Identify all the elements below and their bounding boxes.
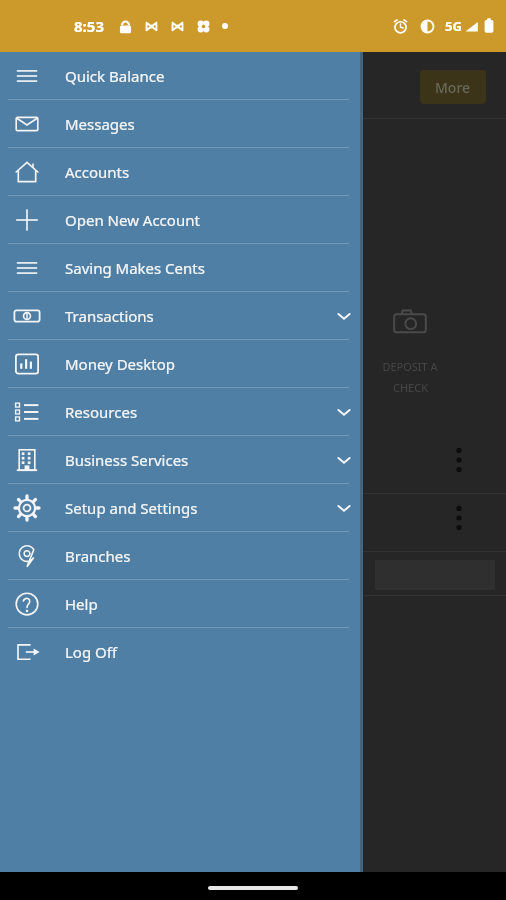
button[interactable]: Saving Makes Cents bbox=[0, 244, 363, 291]
staticText: Saving Makes Cents bbox=[65, 258, 205, 278]
staticText: Branches bbox=[65, 546, 131, 566]
staticText: Open New Account bbox=[65, 210, 200, 230]
button[interactable]: Resources bbox=[0, 388, 363, 435]
button[interactable]: Business Services bbox=[0, 436, 363, 483]
button[interactable]: Deposit a check bbox=[372, 305, 448, 395]
staticText: 8:53 bbox=[74, 16, 104, 36]
staticText: Help bbox=[65, 594, 98, 614]
button[interactable]: Open New Account bbox=[0, 196, 363, 243]
staticText: Accounts bbox=[65, 162, 130, 182]
staticText: DEPOSIT A bbox=[382, 359, 438, 374]
button[interactable]: Help bbox=[0, 580, 363, 627]
staticText: Transactions bbox=[65, 306, 154, 326]
button[interactable]: Branches bbox=[0, 532, 363, 579]
staticText: Business Services bbox=[65, 450, 189, 470]
button[interactable]: Transactions bbox=[0, 292, 363, 339]
button[interactable]: More options bbox=[446, 440, 472, 480]
button[interactable]: More bbox=[420, 70, 486, 104]
staticText: Money Desktop bbox=[65, 354, 175, 374]
staticText: CHECK bbox=[393, 380, 428, 395]
staticText: Setup and Settings bbox=[65, 498, 198, 518]
staticText: Messages bbox=[65, 114, 135, 134]
staticText: Quick Balance bbox=[65, 66, 165, 86]
button[interactable]: Quick Balance bbox=[0, 52, 363, 99]
button[interactable]: Setup and Settings bbox=[0, 484, 363, 531]
staticText: Resources bbox=[65, 402, 138, 422]
button[interactable]: More options bbox=[446, 498, 472, 538]
button[interactable]: Money Desktop bbox=[0, 340, 363, 387]
button[interactable]: Log Off bbox=[0, 628, 363, 675]
other: Deposit a check bbox=[392, 305, 428, 341]
button[interactable]: Accounts bbox=[0, 148, 363, 195]
staticText: 5G bbox=[445, 17, 462, 35]
staticText: More bbox=[435, 78, 471, 97]
staticText: Log Off bbox=[65, 642, 118, 662]
button[interactable]: Messages bbox=[0, 100, 363, 147]
